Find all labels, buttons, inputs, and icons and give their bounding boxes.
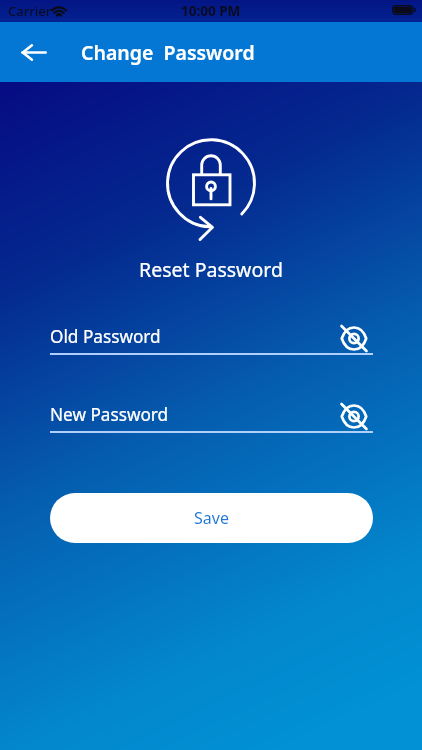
button[interactable]: Toggle New Password visibility (339, 404, 369, 429)
staticText: New Password (50, 403, 169, 426)
staticText: Change Password (81, 39, 255, 66)
button[interactable]: Save (50, 493, 373, 543)
button[interactable]: Back (8, 26, 60, 78)
staticText: Carrier (8, 2, 52, 20)
staticText: 10:00 PM (181, 2, 241, 20)
button[interactable]: Toggle Old Password visibility (339, 326, 369, 351)
staticText: Old Password (50, 325, 161, 348)
staticText: Reset Password (0, 256, 422, 283)
staticText: Save (194, 507, 229, 529)
